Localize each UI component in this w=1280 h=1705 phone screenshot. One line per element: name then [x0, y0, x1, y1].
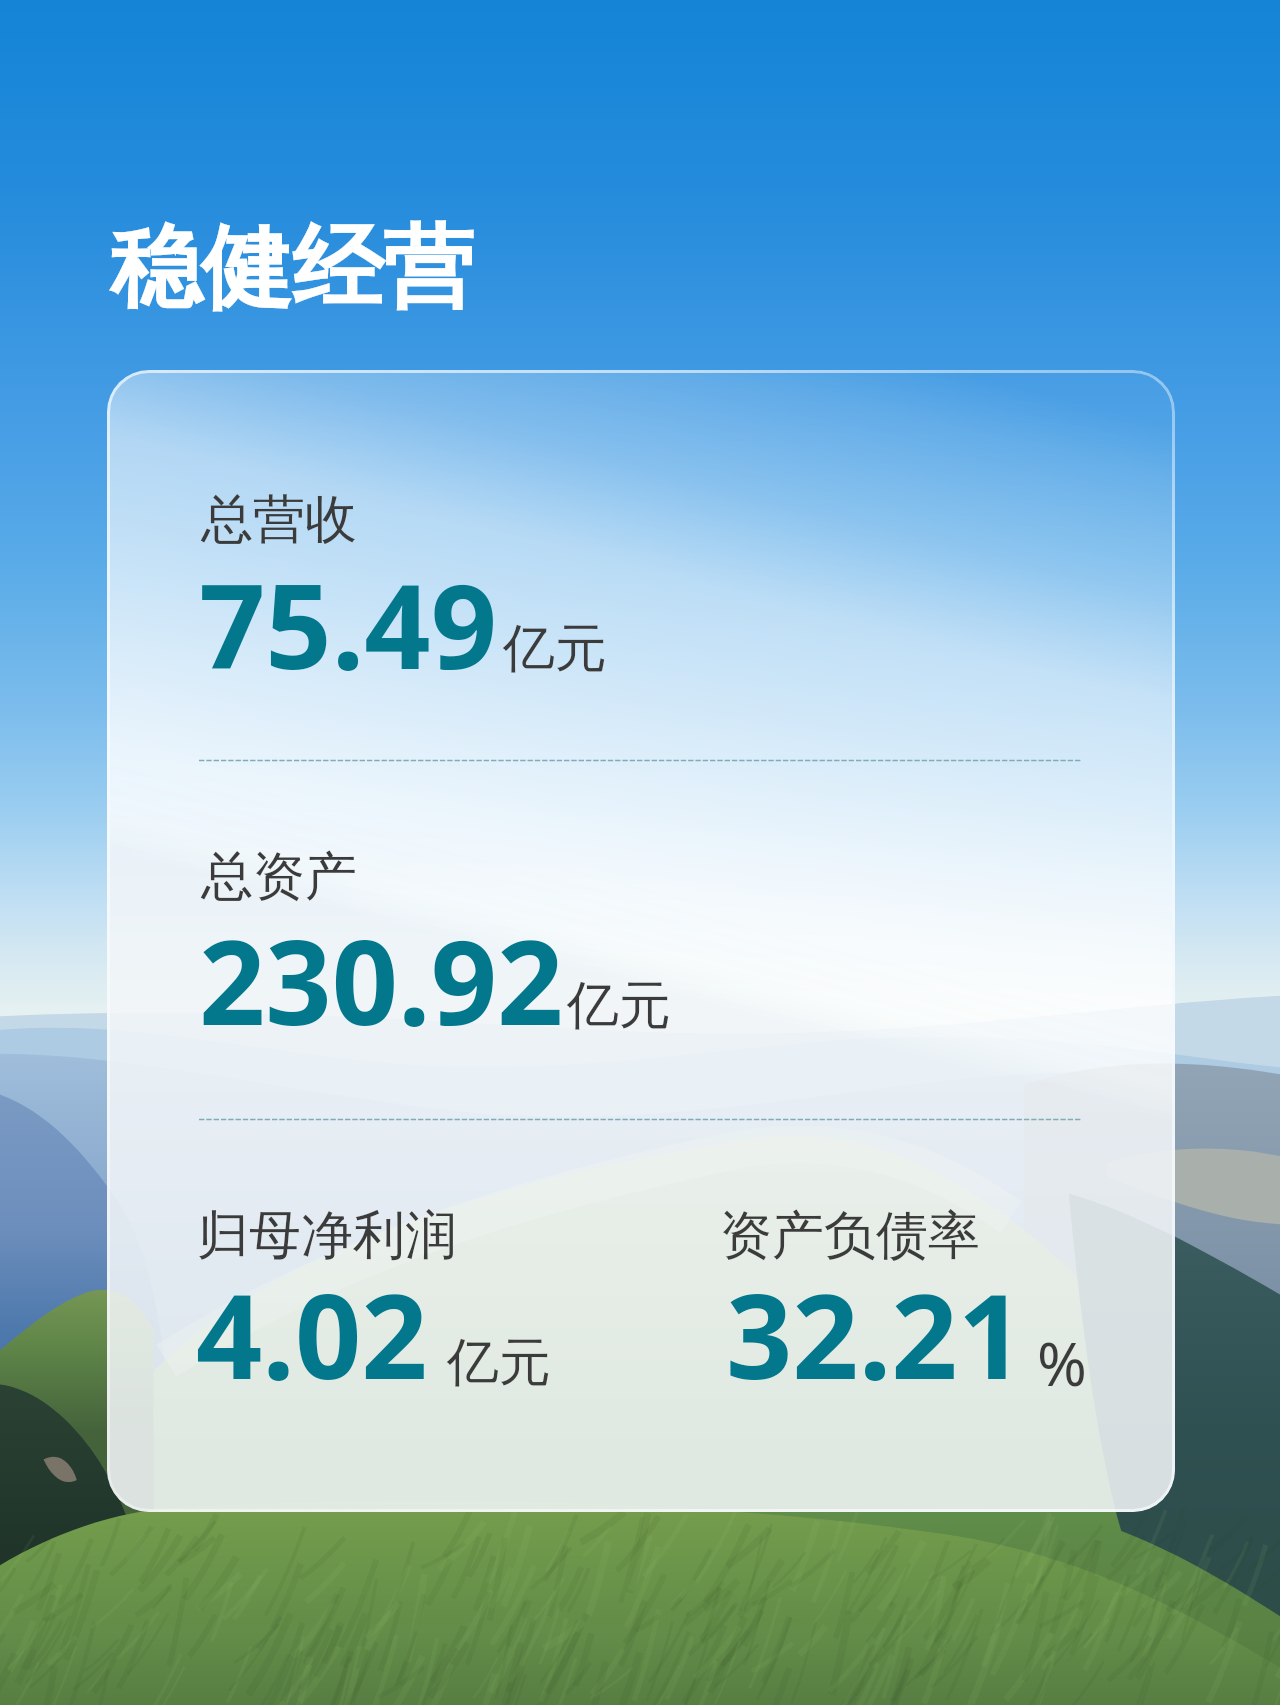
staticText: 归母净利润 — [197, 1203, 457, 1269]
staticText: 75.49 — [199, 545, 498, 703]
button[interactable]: 总资产 — [199, 828, 1083, 1098]
button[interactable]: 总营收 — [199, 470, 1083, 740]
staticText: 稳健经营 — [110, 211, 474, 326]
staticText: % — [1037, 1322, 1087, 1404]
staticText: 4.02 — [196, 1255, 428, 1413]
button[interactable] — [107, 370, 1175, 1512]
staticText: 资产负债率 — [720, 1203, 980, 1269]
staticText: 总营收 — [201, 487, 357, 553]
staticText: 32.21 — [726, 1255, 1025, 1413]
staticText: 亿元 — [503, 616, 607, 682]
staticText: 总资产 — [201, 844, 357, 910]
button[interactable]: 资产负债率 — [724, 1186, 1164, 1436]
staticText: 亿元 — [567, 973, 671, 1039]
button[interactable]: 归母净利润 — [196, 1186, 636, 1436]
staticText: 亿元 — [447, 1330, 551, 1396]
staticText: 230.92 — [199, 901, 564, 1059]
